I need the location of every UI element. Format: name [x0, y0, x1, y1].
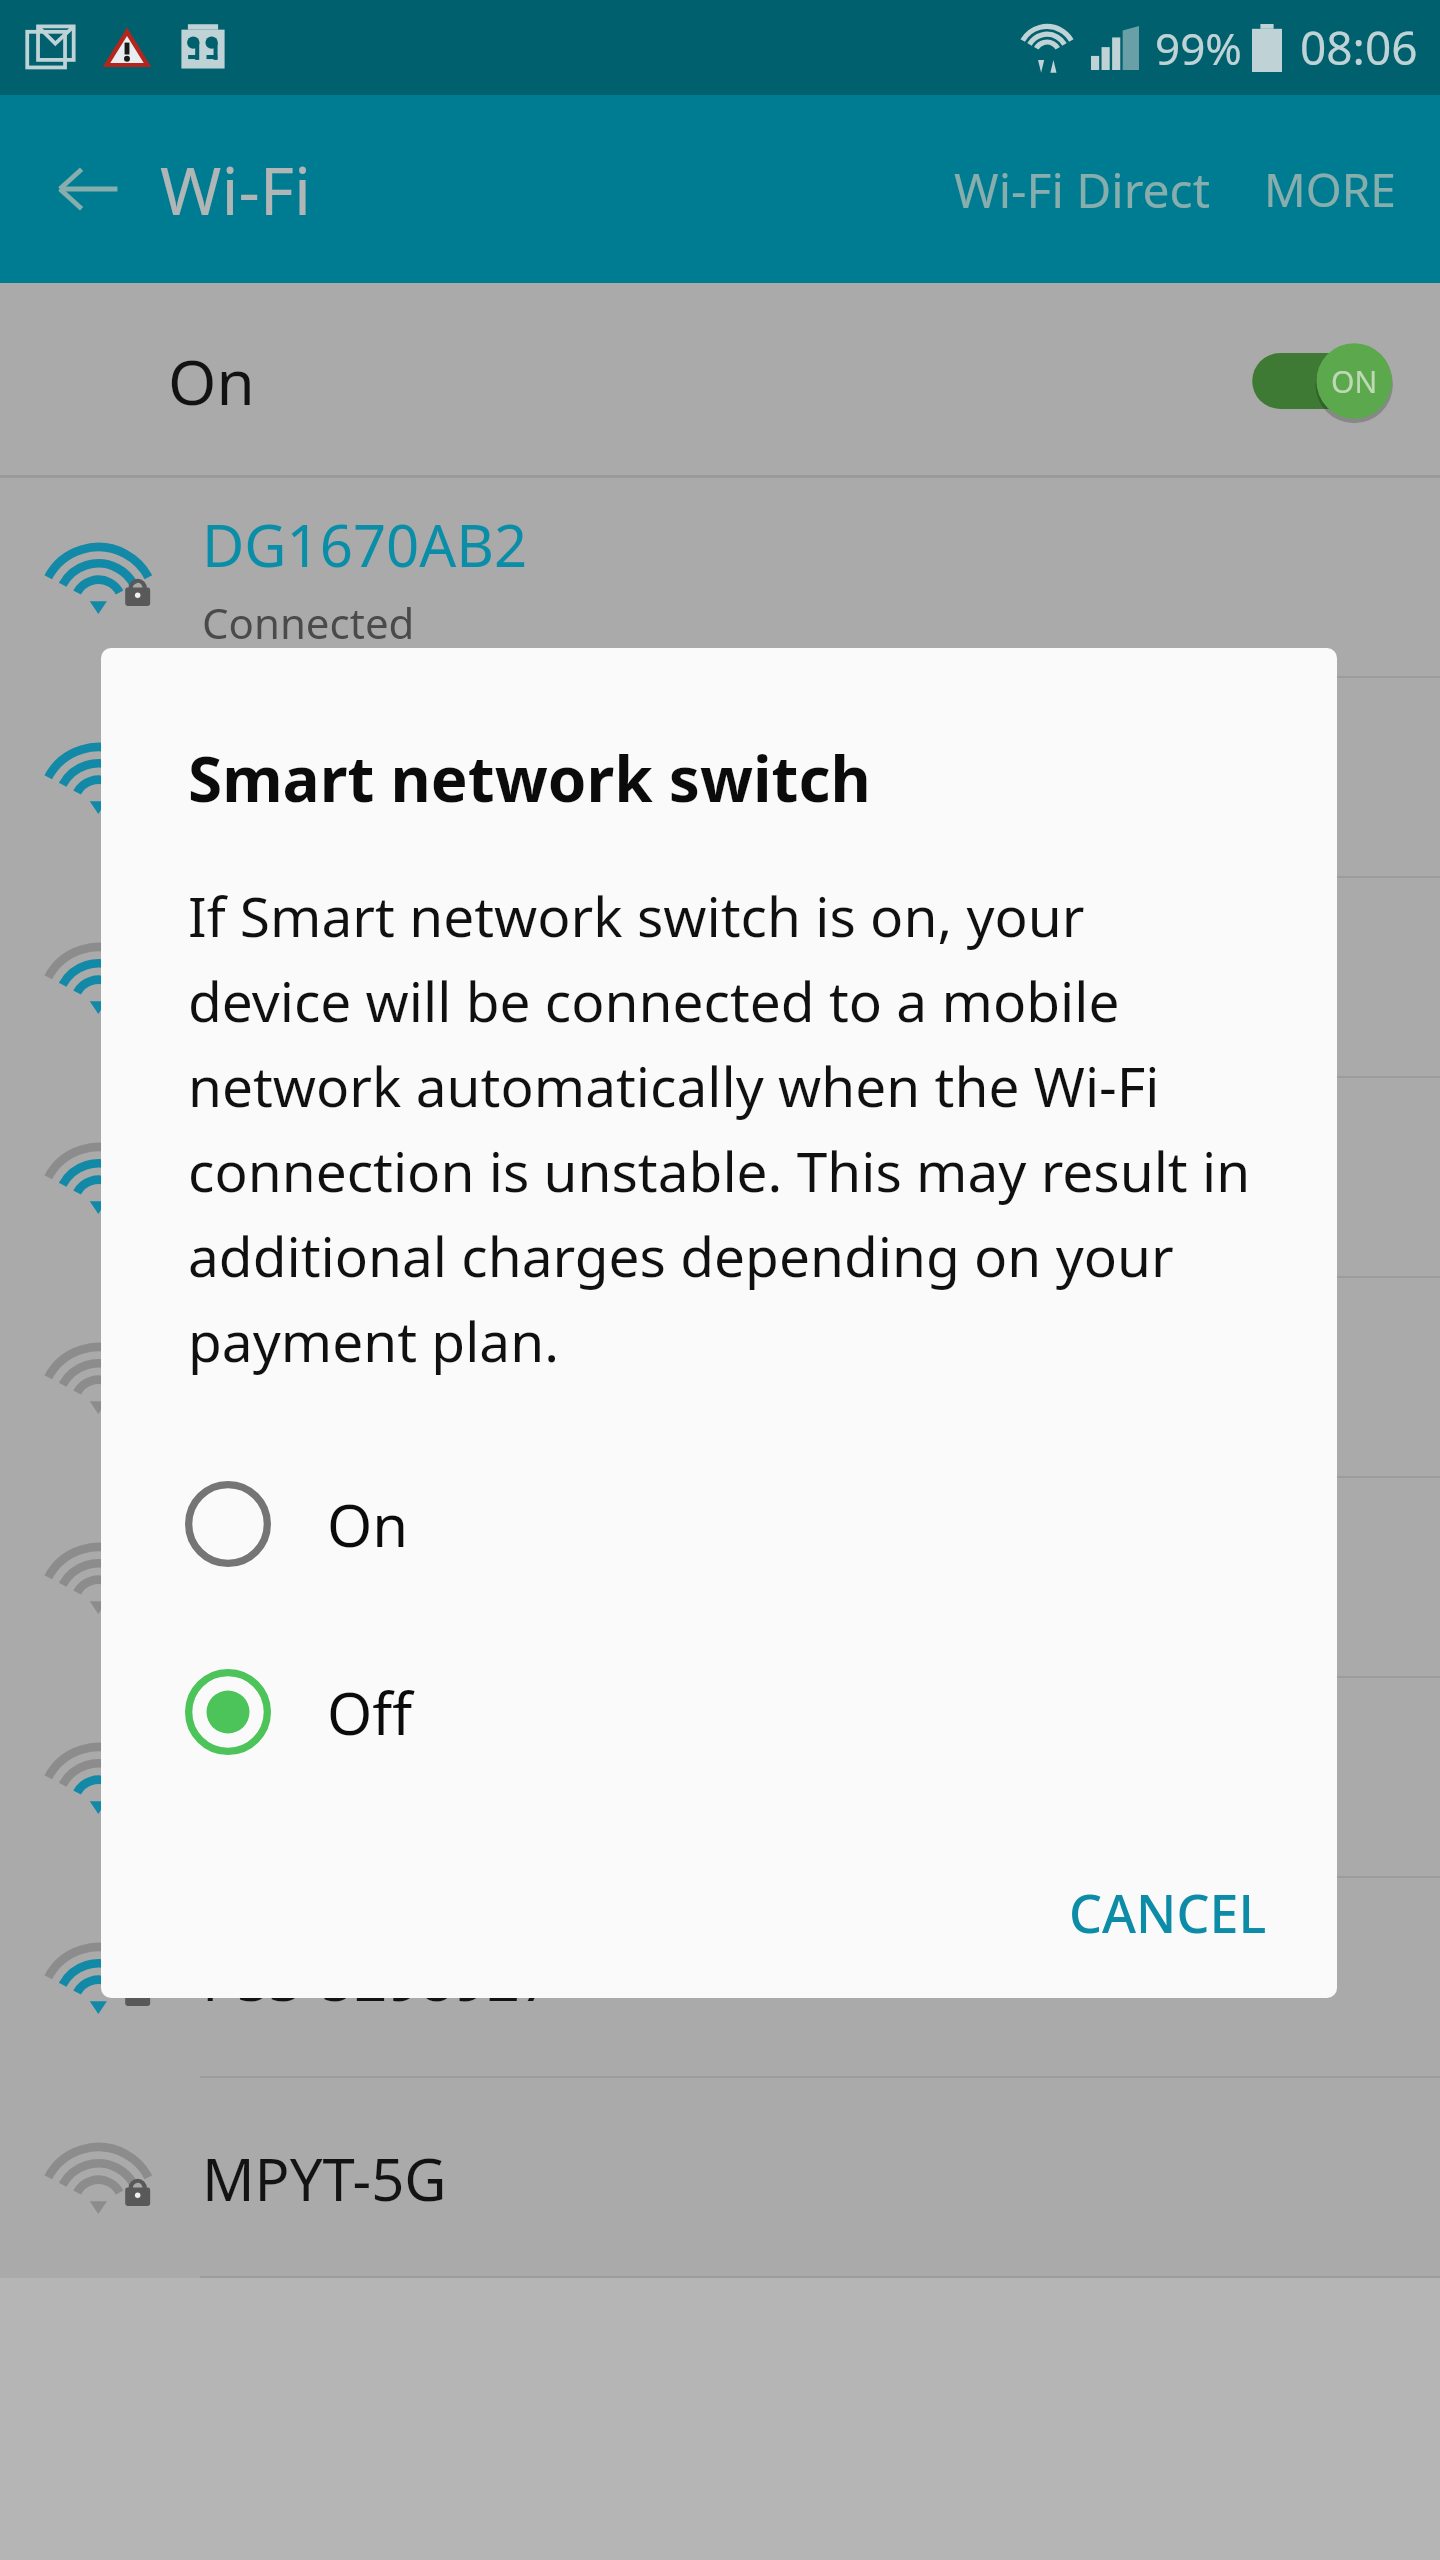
staticText: On	[327, 1485, 409, 1564]
staticText: Wi-Fi Direct	[954, 157, 1210, 222]
button[interactable]: DG1670AB2	[0, 478, 1440, 678]
button[interactable]: BELL742	[0, 1478, 1440, 1678]
button[interactable]: Wi-Fi Direct	[940, 135, 1224, 244]
staticText: Off	[327, 1673, 413, 1752]
staticText: ATT4kPtyZ5	[202, 1139, 517, 1218]
button[interactable]: ATT4kPtyZ5	[0, 1078, 1440, 1278]
staticText: BELL742	[202, 1539, 433, 1618]
button[interactable]: NETGEAR58	[0, 678, 1440, 878]
button[interactable]: HOME-8A22	[0, 878, 1440, 1078]
staticText: Connected	[202, 594, 415, 651]
button[interactable]: MPYT-5G	[0, 2078, 1440, 2278]
staticText: DG1670AB2	[202, 505, 528, 584]
button[interactable]: MORE	[1254, 136, 1406, 243]
staticText: 08:06	[1300, 16, 1418, 79]
staticText: CANCEL	[1069, 1877, 1267, 1948]
button[interactable]: linksys-2G	[0, 1278, 1440, 1478]
staticText: 99%	[1155, 18, 1242, 78]
staticText: PS3-5298927	[202, 1939, 554, 2018]
button[interactable]: Navigate up	[40, 141, 136, 237]
staticText: If Smart network switch is on, your devi…	[188, 878, 1261, 1378]
button[interactable]: On	[0, 283, 1440, 478]
staticText: Wi-Fi	[160, 144, 311, 234]
button[interactable]: CANCEL	[1039, 1851, 1297, 1974]
button[interactable]: Off	[101, 1618, 1337, 1806]
staticText: NETGEAR58	[202, 739, 524, 818]
button[interactable]: PS3-5298927	[0, 1878, 1440, 2078]
button[interactable]: NSKRITZ-5G	[0, 1678, 1440, 1878]
staticText: ON	[1331, 361, 1378, 402]
staticText: NSKRITZ-5G	[202, 1739, 530, 1818]
staticText: MPYT-5G	[202, 2139, 447, 2218]
staticText: MORE	[1264, 158, 1396, 221]
staticText: Smart network switch	[188, 736, 871, 820]
button[interactable]: On	[101, 1430, 1337, 1618]
button[interactable]: Wi-Fi on	[1242, 336, 1412, 426]
staticText: HOME-8A22	[202, 939, 531, 1018]
staticText: On	[168, 339, 255, 423]
staticText: linksys-2G	[202, 1339, 478, 1418]
